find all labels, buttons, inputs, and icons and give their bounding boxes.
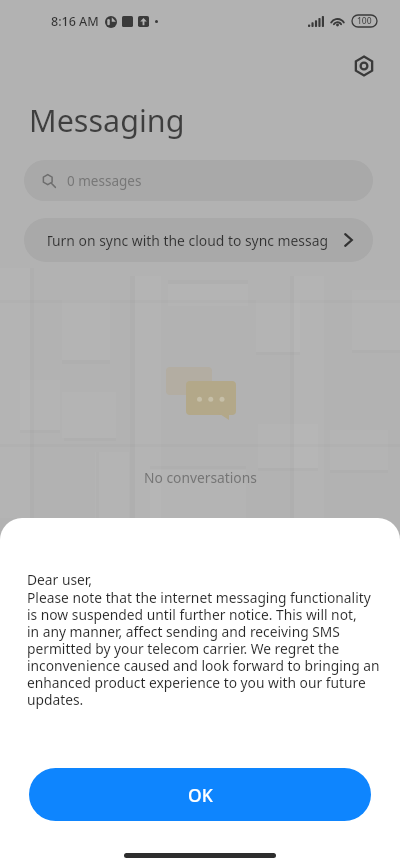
button[interactable]: Settings (348, 50, 380, 82)
staticText: 100 (357, 15, 372, 27)
button[interactable]: OK (29, 768, 371, 821)
button[interactable]: 0 messages (24, 160, 373, 201)
staticText: 8:16 AM (51, 13, 99, 30)
staticText: 0 messages (67, 172, 142, 190)
staticText: No conversations (144, 468, 257, 487)
button[interactable]: Turn on sync with the cloud to sync mess… (24, 218, 373, 262)
staticText: Messaging (29, 99, 185, 141)
staticText: OK (188, 783, 213, 807)
staticText: Turn on sync with the cloud to sync mess… (48, 231, 328, 250)
staticText: Dear user, Please note that the internet… (27, 570, 387, 709)
